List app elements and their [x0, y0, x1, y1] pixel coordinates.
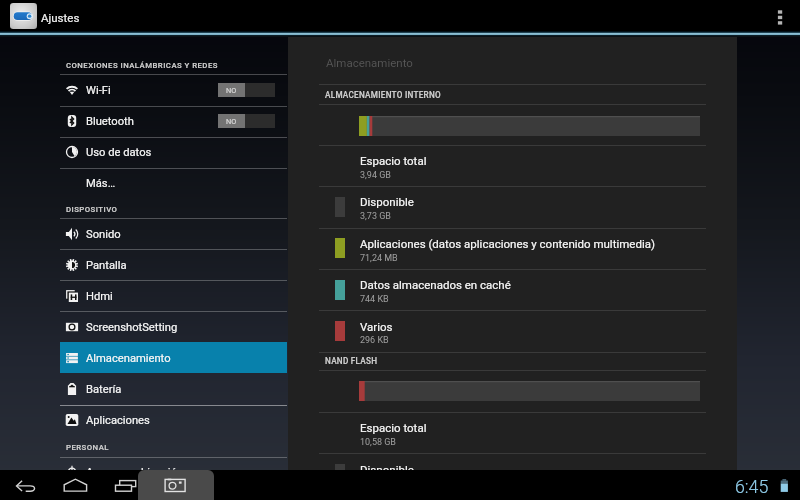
staticText: 296 KB [360, 335, 389, 346]
staticText: 71,24 MB [360, 253, 398, 264]
button[interactable] [60, 374, 287, 405]
button[interactable] [60, 137, 287, 168]
staticText: Disponible [360, 195, 414, 208]
button[interactable] [60, 311, 287, 342]
staticText: Hdmi [86, 290, 113, 303]
staticText: PERSONAL [66, 443, 109, 452]
staticText: NAND FLASH [325, 356, 378, 366]
button[interactable] [60, 280, 287, 311]
button[interactable]: Aplicaciones recientes [108, 470, 144, 500]
staticText: Aplicaciones [86, 414, 150, 427]
staticText: Ajustes [41, 11, 80, 24]
staticText: DISPOSITIVO [66, 205, 118, 214]
staticText: 3,94 GB [360, 170, 391, 181]
button[interactable]: Atrás [8, 470, 44, 500]
staticText: 3,73 GB [360, 211, 391, 222]
button[interactable] [60, 106, 287, 137]
staticText: NO [226, 117, 237, 126]
staticText: Batería [86, 383, 122, 396]
staticText: Sonido [86, 228, 121, 241]
staticText: CONEXIONES INALÁMBRICAS Y REDES [66, 61, 218, 70]
button[interactable] [60, 249, 287, 280]
staticText: Almacenamiento [326, 56, 413, 69]
button[interactable] [288, 412, 737, 453]
button[interactable] [288, 186, 737, 227]
button[interactable] [288, 269, 737, 310]
staticText: Aplicaciones (datos aplicaciones y conte… [360, 237, 655, 250]
staticText: ScreenshotSetting [86, 321, 178, 334]
button[interactable]: Ajustes [10, 3, 37, 29]
button[interactable] [60, 405, 287, 436]
staticText: Uso de datos [86, 146, 152, 159]
button[interactable]: Más opciones [770, 4, 792, 30]
staticText: Wi-Fi [86, 84, 111, 97]
button[interactable]: Inicio [58, 470, 94, 500]
staticText: Acceso a ubicación [86, 466, 183, 479]
staticText: Almacenamiento [86, 352, 171, 365]
button[interactable] [60, 342, 287, 373]
button[interactable] [288, 145, 737, 186]
button[interactable] [60, 168, 287, 199]
button[interactable] [60, 457, 287, 488]
staticText: Más… [86, 177, 116, 190]
staticText: ALMACENAMIENTO INTERNO [325, 90, 441, 100]
staticText: Varios [360, 320, 393, 333]
button[interactable]: Ajustes [38, 0, 98, 32]
staticText: 6:45 [735, 476, 769, 497]
button[interactable]: Captura de pantalla [158, 470, 194, 500]
staticText: Espacio total [360, 421, 427, 434]
staticText: NO [226, 86, 237, 95]
button[interactable] [288, 228, 737, 269]
staticText: Datos almacenados en caché [360, 278, 511, 291]
button[interactable] [60, 74, 287, 105]
staticText: Pantalla [86, 259, 127, 272]
button[interactable] [288, 453, 737, 494]
staticText: Bluetooth [86, 115, 134, 128]
staticText: Espacio total [360, 154, 427, 167]
button[interactable] [60, 218, 287, 249]
button[interactable] [288, 310, 737, 351]
staticText: Disponible [360, 463, 414, 476]
staticText: 744 KB [360, 294, 389, 305]
button[interactable]: NO [218, 83, 275, 97]
staticText: 10,58 GB [360, 437, 396, 448]
button[interactable]: NO [218, 114, 275, 128]
